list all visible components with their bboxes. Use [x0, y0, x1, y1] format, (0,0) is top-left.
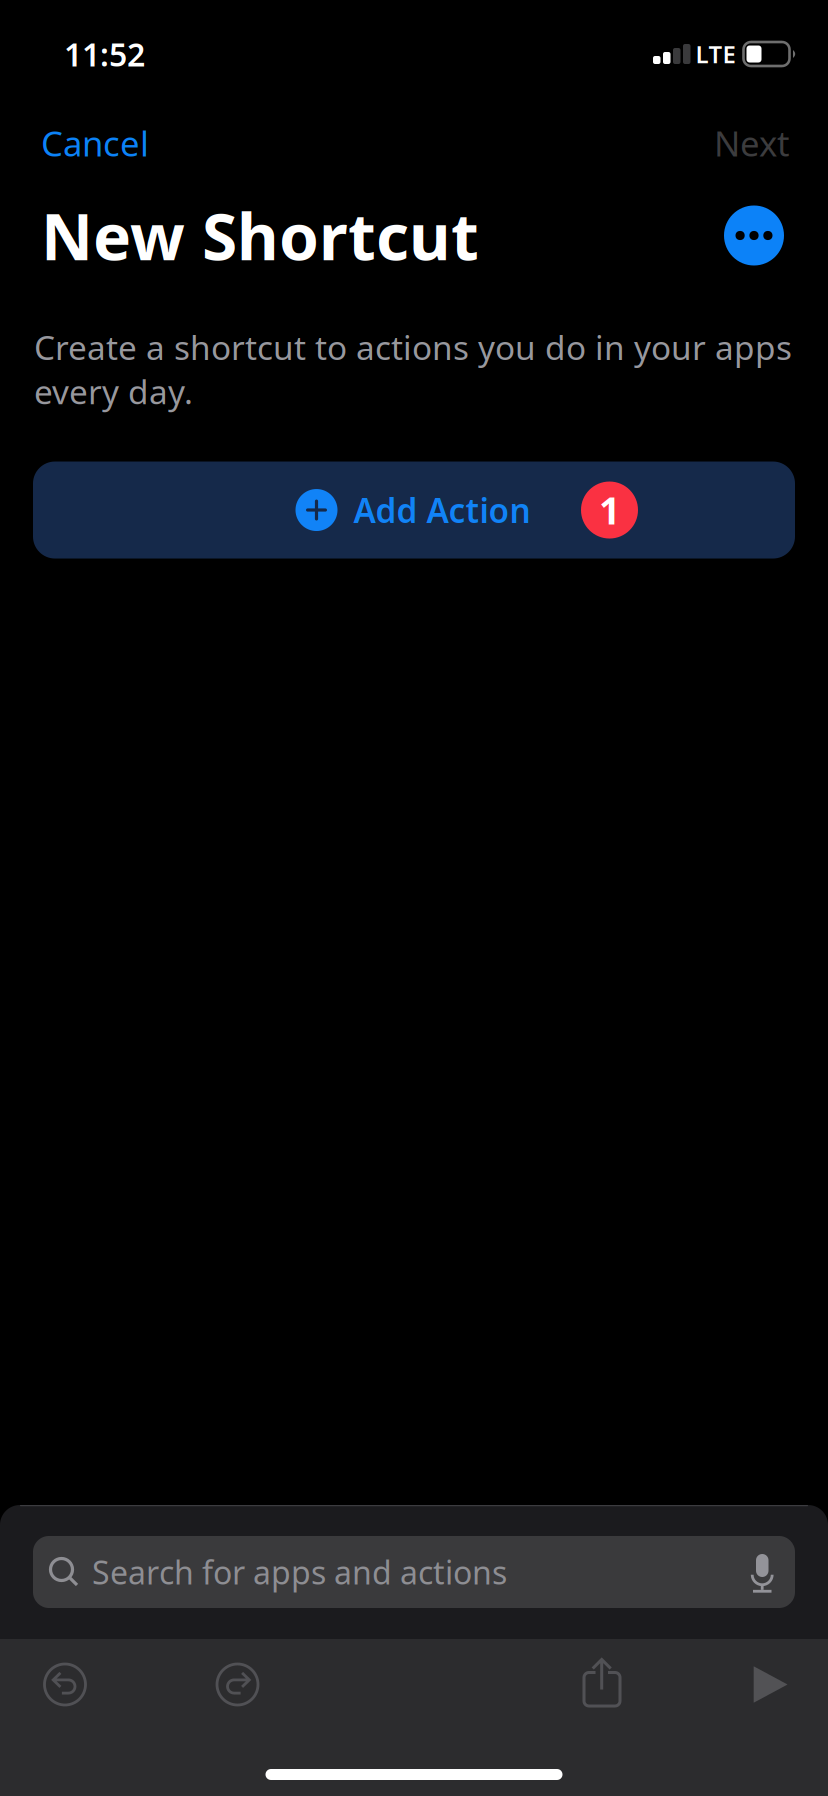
- button[interactable]: Redo: [215, 1662, 259, 1706]
- button[interactable]: Share: [582, 1658, 621, 1707]
- button[interactable]: More options: [724, 205, 784, 265]
- staticText: Add Action: [353, 488, 530, 532]
- button[interactable]: Cancel: [35, 112, 155, 174]
- staticText: 1: [599, 485, 620, 535]
- button[interactable]: Add Action: [33, 461, 795, 558]
- staticText: Next: [714, 120, 790, 166]
- staticText: Search for apps and actions: [92, 1551, 507, 1593]
- button[interactable]: Next: [708, 112, 796, 174]
- button[interactable]: Undo: [43, 1662, 87, 1706]
- staticText: LTE: [695, 38, 735, 70]
- staticText: 11:52: [64, 33, 145, 75]
- button[interactable]: Run: [752, 1665, 788, 1703]
- staticText: Cancel: [41, 120, 149, 166]
- staticText: Create a shortcut to actions you do in y…: [34, 325, 792, 413]
- staticText: New Shortcut: [41, 193, 479, 278]
